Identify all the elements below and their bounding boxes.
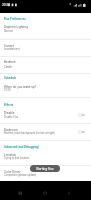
- staticText: 20:30: [2, 3, 11, 7]
- staticText: Red text, black background (for late at …: [4, 132, 76, 135]
- staticText: Candle: [4, 66, 76, 69]
- staticText: Color Driver: [4, 170, 76, 174]
- button[interactable]: Recent apps: [11, 187, 28, 199]
- button[interactable]: Starting f.lux: [30, 165, 60, 172]
- staticText: Advanced (and Debugging): [4, 145, 39, 148]
- button[interactable]: [0, 40, 91, 53]
- staticText: When do you wake up?: [4, 85, 76, 89]
- staticText: Disable: [4, 111, 76, 115]
- staticText: Bedtime: [4, 60, 76, 64]
- button[interactable]: Home: [36, 187, 53, 199]
- button[interactable]: [0, 166, 91, 179]
- staticText: Trying to find location...: [4, 157, 76, 160]
- button[interactable]: [0, 21, 91, 34]
- staticText: Effects: [4, 103, 14, 106]
- staticText: Disable f.lux: [4, 116, 76, 119]
- button[interactable]: Back: [60, 187, 77, 199]
- staticText: Starting f.lux: [36, 167, 54, 171]
- staticText: Incandescent: [4, 48, 76, 51]
- staticText: Flux Preferences: [4, 17, 26, 20]
- staticText: Location: [4, 153, 76, 157]
- staticText: Schedule: [4, 76, 16, 79]
- button[interactable]: Toggle: [75, 111, 89, 119]
- button[interactable]: [0, 56, 91, 69]
- staticText: Daytime Lighting: [4, 25, 76, 29]
- staticText: Normal: [4, 30, 76, 33]
- staticText: Sunset: [4, 44, 76, 48]
- button[interactable]: [0, 124, 91, 137]
- button[interactable]: [0, 107, 91, 120]
- staticText: Darkroom: [4, 128, 76, 132]
- staticText: 07:30: [4, 89, 76, 92]
- button[interactable]: [0, 149, 91, 162]
- button[interactable]: [0, 81, 91, 94]
- staticText: Compositor (please update): [4, 174, 76, 177]
- button[interactable]: Toggle: [75, 128, 89, 136]
